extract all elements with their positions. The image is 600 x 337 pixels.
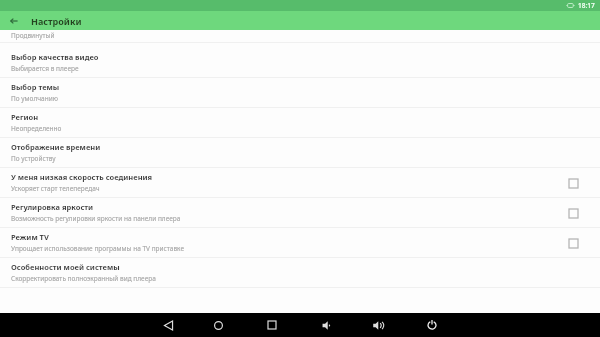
button[interactable]: Volume up	[368, 315, 388, 335]
button[interactable]: Регулировка яркости	[0, 198, 600, 227]
staticText: Неопределенно	[11, 124, 62, 133]
button[interactable]: Recent apps	[262, 315, 282, 335]
staticText: Регулировка яркости	[11, 202, 94, 212]
button[interactable]: Power	[422, 315, 442, 335]
staticText: Продвинутый	[11, 31, 55, 40]
button[interactable]: Back	[5, 12, 23, 30]
button[interactable]: У меня низкая скорость соединения	[0, 168, 600, 197]
staticText: Скорректировать полноэкранный вид плеера	[11, 274, 156, 283]
button[interactable]: Выбор темы	[0, 78, 600, 107]
button[interactable]: Home	[208, 315, 228, 335]
button[interactable]: Выбор качества видео	[0, 48, 600, 77]
button[interactable]: Toggle У меня низкая скорость соединения	[565, 175, 581, 191]
staticText: Выбирается в плеере	[11, 64, 79, 73]
button[interactable]: Особенности моей системы	[0, 258, 600, 287]
button[interactable]: Регион	[0, 108, 600, 137]
staticText: Регион	[11, 112, 39, 122]
button[interactable]: Back	[158, 315, 178, 335]
button[interactable]: Volume down	[317, 315, 337, 335]
staticText: По умолчанию	[11, 94, 58, 103]
staticText: Настройки	[31, 15, 82, 27]
staticText: У меня низкая скорость соединения	[11, 172, 153, 182]
staticText: Ускоряет старт телепередач	[11, 184, 100, 193]
staticText: Упрощает использование программы на TV п…	[11, 244, 184, 253]
button[interactable]: Отображение времени	[0, 138, 600, 167]
button[interactable]: Toggle Режим TV	[565, 235, 581, 251]
button[interactable]: Режим TV	[0, 228, 600, 257]
staticText: Отображение времени	[11, 142, 101, 152]
button[interactable]: Продвинутый	[0, 30, 600, 42]
button[interactable]: Toggle Регулировка яркости	[565, 205, 581, 221]
staticText: Возможность регулировки яркости на панел…	[11, 214, 181, 223]
staticText: 18:17	[578, 1, 595, 10]
staticText: По устройству	[11, 154, 56, 163]
staticText: Выбор темы	[11, 82, 60, 92]
staticText: Особенности моей системы	[11, 262, 120, 272]
staticText: Выбор качества видео	[11, 52, 99, 62]
staticText: Режим TV	[11, 232, 49, 242]
